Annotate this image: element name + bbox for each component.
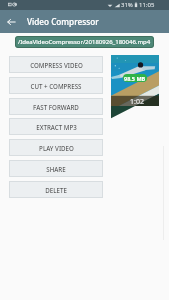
staticText: 1:02 [130, 97, 144, 107]
button[interactable]: Back [0, 11, 23, 33]
staticText: COMPRESS VIDEO [30, 61, 83, 69]
button[interactable]: EXTRACT MP3 [9, 118, 103, 135]
staticText: 98.5 MB [124, 75, 146, 82]
staticText: PLAY VIDEO [39, 144, 74, 152]
button[interactable]: PLAY VIDEO [9, 139, 103, 156]
staticText: /IdeaVideoCompressor/20180926_180046.mp4 [18, 38, 151, 46]
button[interactable]: Video thumbnail [111, 55, 159, 106]
staticText: SHARE [46, 165, 66, 173]
button[interactable]: FAST FORWARD [9, 98, 103, 115]
staticText: FAST FORWARD [33, 103, 79, 111]
button[interactable]: SHARE [9, 160, 103, 177]
button[interactable]: DELETE [9, 181, 103, 198]
staticText: CUT + COMPRESS [30, 82, 82, 90]
staticText: DELETE [45, 186, 67, 194]
button[interactable]: COMPRESS VIDEO [9, 56, 103, 73]
staticText: Video Compressor [27, 16, 99, 27]
staticText: EXTRACT MP3 [36, 123, 77, 131]
button[interactable]: CUT + COMPRESS [9, 77, 103, 94]
staticText: 31% [121, 1, 133, 9]
staticText: 11:05 [139, 1, 155, 9]
button[interactable]: /IdeaVideoCompressor/20180926_180046.mp4 [15, 36, 154, 48]
